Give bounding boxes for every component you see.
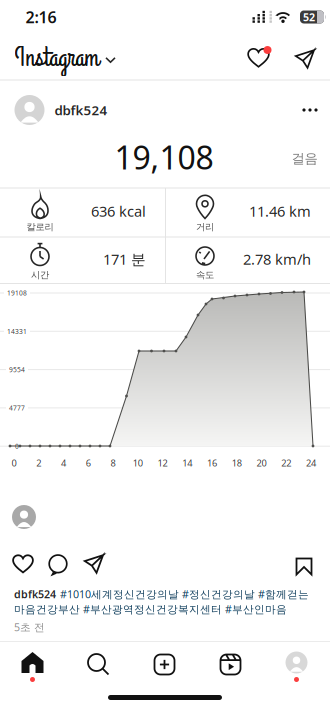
button[interactable]: Reels <box>217 651 243 677</box>
staticText: 마음건강부산 #부산광역정신건강복지센터 #부산인마음 <box>14 602 287 616</box>
button[interactable]: Messages <box>293 47 317 71</box>
staticText: 0 <box>15 442 19 451</box>
staticText: 4 <box>61 457 66 469</box>
staticText: 16 <box>207 457 217 469</box>
button[interactable]: Home <box>20 651 44 683</box>
button[interactable]: Comment <box>45 551 71 577</box>
staticText: dbfk524 <box>14 587 56 601</box>
button[interactable]: Share <box>81 551 107 577</box>
button[interactable]: Like <box>10 551 36 577</box>
staticText: 171 분 <box>103 249 146 269</box>
staticText: 2:16 <box>25 6 56 28</box>
staticText: 14331 <box>7 327 27 336</box>
staticText: 9554 <box>9 365 25 374</box>
staticText: 걸음 <box>291 150 317 167</box>
staticText: 속도 <box>196 269 214 281</box>
button[interactable]: Save <box>291 553 317 579</box>
staticText: 19108 <box>7 289 27 297</box>
staticText: 19,108 <box>114 136 213 178</box>
staticText: 18 <box>232 457 242 469</box>
staticText: dbfk524 <box>54 101 107 119</box>
staticText: 8 <box>110 457 115 469</box>
button[interactable]: Instagram menu <box>14 40 115 76</box>
staticText: 칼로리 <box>26 221 53 233</box>
staticText: #1010세계정신건강의날 #정신건강의날 #함께걷는 <box>60 587 309 601</box>
staticText: 636 kcal <box>91 201 146 221</box>
button[interactable]: Search <box>85 651 111 677</box>
staticText: 5초 전 <box>14 620 45 634</box>
staticText: 10 <box>133 457 143 469</box>
button[interactable]: Tagged users <box>12 505 36 529</box>
staticText: 20 <box>256 457 266 469</box>
staticText: 11.46 km <box>249 201 311 221</box>
button[interactable]: More options <box>298 101 322 119</box>
staticText: 6 <box>86 457 91 469</box>
staticText: 0 <box>11 457 16 469</box>
staticText: 24 <box>306 457 316 469</box>
staticText: 12 <box>157 457 167 469</box>
staticText: 2.78 km/h <box>243 249 311 269</box>
button[interactable]: dbfk524 <box>14 95 107 125</box>
staticText: Instagram <box>14 40 98 76</box>
button[interactable]: Notifications <box>247 47 271 71</box>
staticText: 4777 <box>9 403 25 412</box>
staticText: 14 <box>182 457 192 469</box>
staticText: 22 <box>281 457 291 469</box>
staticText: 시간 <box>31 269 49 281</box>
button[interactable]: New post <box>151 651 177 677</box>
staticText: 거리 <box>196 221 214 233</box>
staticText: 2 <box>36 457 41 469</box>
button[interactable]: Profile <box>285 651 307 683</box>
staticText: 52 <box>303 10 315 24</box>
